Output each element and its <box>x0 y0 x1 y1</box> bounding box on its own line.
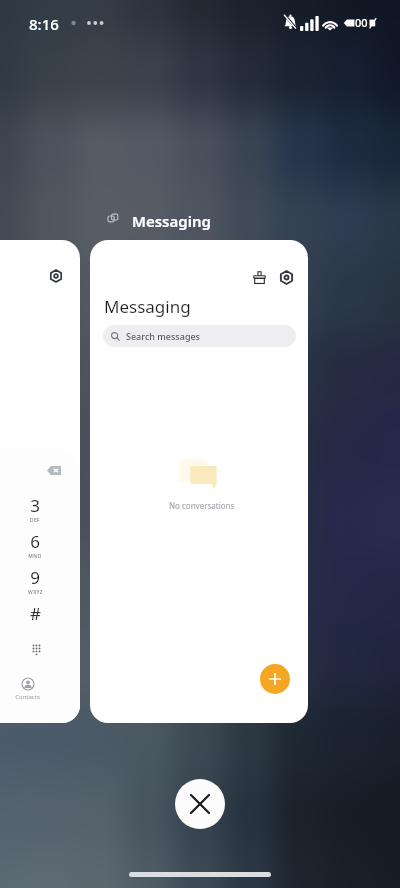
staticText: # <box>30 602 41 625</box>
button[interactable]: Contacts <box>7 678 47 701</box>
staticText: DEF <box>30 517 40 524</box>
staticText: Messaging <box>132 211 211 231</box>
staticText: Messaging <box>104 295 191 318</box>
button[interactable]: Settings <box>275 266 297 288</box>
button[interactable]: Settings <box>46 266 66 286</box>
button[interactable]: New conversation <box>260 664 290 694</box>
staticText: 6 <box>30 530 40 553</box>
button[interactable]: Clean up <box>248 266 270 288</box>
staticText: 00 <box>355 15 368 30</box>
staticText: Contacts <box>15 693 40 701</box>
button[interactable]: Clear all <box>175 779 225 829</box>
staticText: Search messages <box>126 330 200 342</box>
button[interactable]: Settings <box>0 240 80 723</box>
staticText: 9 <box>30 566 40 589</box>
staticText: WXYZ <box>28 589 43 596</box>
button[interactable]: Clean up <box>90 240 308 723</box>
button[interactable]: Search messages <box>103 325 296 347</box>
staticText: 3 <box>30 494 40 517</box>
staticText: 8:16 <box>29 14 59 34</box>
staticText: MNO <box>28 553 42 560</box>
staticText: No conversations <box>169 500 235 511</box>
